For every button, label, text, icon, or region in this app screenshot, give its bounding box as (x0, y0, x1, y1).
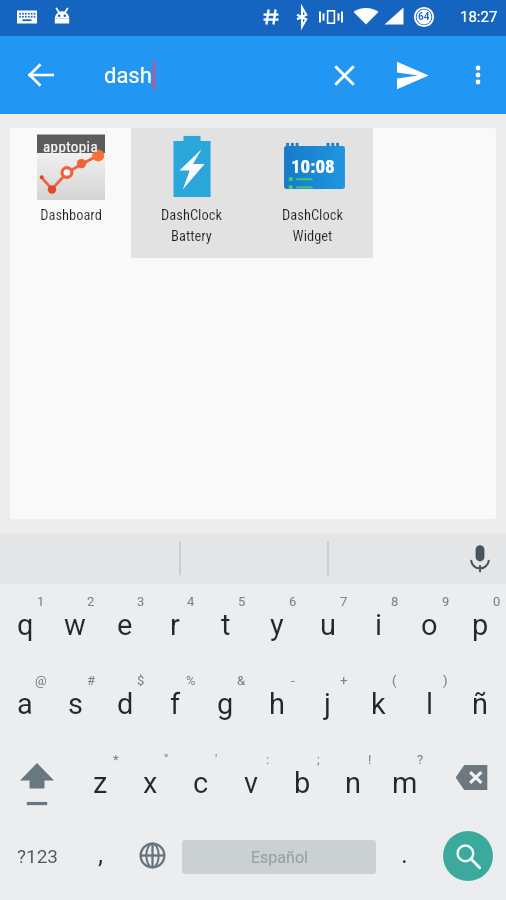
staticText: 4 (187, 594, 195, 609)
button[interactable]: r (150, 584, 200, 663)
staticText: apptopia (43, 138, 99, 156)
button[interactable]: m (379, 742, 430, 821)
button[interactable]: i (353, 584, 404, 663)
button[interactable]: Search (430, 821, 506, 900)
staticText: ?123 (17, 845, 59, 867)
button[interactable]: c (175, 742, 226, 821)
staticText: i (375, 608, 383, 642)
button[interactable]: n (328, 742, 379, 821)
staticText: ' (215, 752, 218, 767)
staticText: & (237, 673, 246, 688)
staticText: p (472, 608, 489, 642)
button[interactable]: DashClock Battery (131, 128, 252, 258)
staticText: 2 (87, 594, 95, 609)
button[interactable]: Backspace (430, 742, 506, 821)
button[interactable]: p (455, 584, 506, 663)
button[interactable]: Shift (0, 742, 75, 821)
staticText: , (98, 839, 104, 869)
button[interactable]: k (353, 663, 404, 742)
button[interactable]: t (200, 584, 251, 663)
button[interactable]: j (302, 663, 353, 742)
button[interactable]: f (150, 663, 200, 742)
button[interactable]: Back (0, 36, 82, 114)
button[interactable]: z (75, 742, 125, 821)
staticText: @ (35, 673, 47, 688)
button[interactable]: y (251, 584, 302, 663)
button[interactable]: ñ (455, 663, 506, 742)
staticText: 7 (340, 594, 348, 609)
button[interactable]: More options (449, 36, 506, 114)
staticText: 6 (289, 594, 297, 609)
staticText: a (17, 687, 33, 721)
button[interactable]: h (251, 663, 302, 742)
button[interactable]: w (50, 584, 100, 663)
staticText: dash (104, 63, 152, 89)
staticText: c (193, 766, 209, 800)
staticText: DashClock Widget (282, 207, 343, 244)
button[interactable]: a (0, 663, 50, 742)
button[interactable]: apptopia (10, 128, 131, 258)
staticText: # (87, 673, 96, 688)
staticText: * (113, 752, 119, 767)
staticText: + (340, 673, 348, 688)
staticText: % (186, 673, 196, 688)
staticText: d (117, 687, 134, 721)
staticText: z (93, 766, 108, 800)
staticText: o (421, 608, 438, 642)
staticText: f (170, 687, 181, 721)
staticText: 8 (391, 594, 399, 609)
staticText: 10:08 (291, 155, 335, 177)
button[interactable]: Español (182, 840, 376, 874)
button[interactable]: g (200, 663, 251, 742)
button[interactable]: x (125, 742, 175, 821)
staticText: ( (392, 673, 397, 688)
staticText: h (269, 687, 285, 721)
staticText: q (17, 608, 34, 642)
button[interactable]: d (100, 663, 150, 742)
staticText: 5 (238, 594, 246, 609)
button[interactable]: v (226, 742, 277, 821)
staticText: r (170, 608, 180, 642)
button[interactable]: u (302, 584, 353, 663)
staticText: m (392, 766, 418, 800)
staticText: t (221, 608, 231, 642)
button[interactable]: Clear (313, 36, 375, 114)
staticText: Dashboard (40, 207, 102, 224)
staticText: ñ (472, 687, 489, 721)
staticText: x (143, 766, 158, 800)
button[interactable]: , (76, 821, 126, 900)
staticText: Español (251, 848, 308, 867)
staticText: s (68, 687, 83, 721)
staticText: 1 (37, 594, 45, 609)
button[interactable]: Send (375, 36, 449, 114)
button[interactable]: Voice input (454, 533, 506, 584)
button[interactable]: b (277, 742, 328, 821)
staticText: y (270, 608, 284, 642)
staticText: 3 (137, 594, 145, 609)
button[interactable]: s (50, 663, 100, 742)
staticText: ; (317, 752, 320, 767)
button[interactable]: . (379, 821, 430, 900)
button[interactable]: l (404, 663, 455, 742)
staticText: DashClock Battery (161, 207, 222, 244)
staticText: 0 (493, 594, 501, 609)
staticText: b (294, 766, 311, 800)
button[interactable]: e (100, 584, 150, 663)
staticText: v (244, 766, 259, 800)
staticText: u (320, 608, 336, 642)
staticText: - (291, 673, 295, 688)
staticText: ) (443, 673, 448, 688)
staticText: 64 (418, 11, 430, 23)
staticText: . (401, 839, 408, 869)
button[interactable]: o (404, 584, 455, 663)
staticText: g (217, 687, 234, 721)
staticText: e (117, 608, 133, 642)
button[interactable]: ?123 (0, 821, 76, 900)
button[interactable]: q (0, 584, 50, 663)
button[interactable]: Change language (126, 821, 178, 900)
staticText: $ (137, 673, 145, 688)
staticText: n (345, 766, 362, 800)
staticText: 18:27 (460, 8, 498, 26)
staticText: k (371, 687, 386, 721)
button[interactable]: 10:08 (252, 128, 373, 258)
